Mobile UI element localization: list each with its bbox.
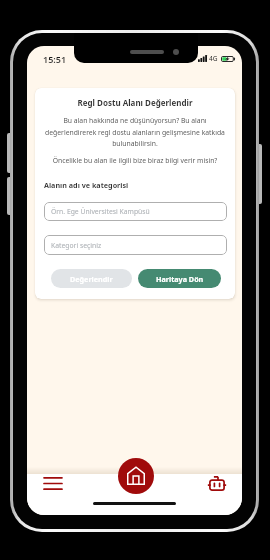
staticText: Örn. Ege Üniversitesi Kampüsü — [51, 207, 150, 216]
staticText: 4G — [209, 54, 218, 63]
staticText: Bu alan hakkında ne düşünüyorsun? Bu ala… — [41, 116, 229, 148]
staticText: Regl Dostu Alanı Değerlendir — [35, 97, 235, 108]
button[interactable]: Menu — [39, 469, 67, 497]
button[interactable]: Home — [118, 458, 154, 494]
staticText: Haritaya Dön — [156, 274, 204, 284]
staticText: Alanın adı ve kategorisi — [44, 180, 129, 190]
staticText: Kategori seçiniz — [51, 241, 102, 250]
staticText: 15:51 — [43, 53, 67, 65]
button[interactable]: Kategori seçiniz — [44, 235, 227, 255]
button[interactable]: Assistant — [203, 469, 231, 497]
button[interactable]: Haritaya Dön — [138, 269, 221, 288]
staticText: Öncelikle bu alan ile ilgili bize biraz … — [35, 156, 235, 165]
button[interactable]: Değerlendir — [51, 269, 132, 288]
button[interactable]: Örn. Ege Üniversitesi Kampüsü — [44, 202, 227, 221]
staticText: Değerlendir — [70, 274, 113, 284]
